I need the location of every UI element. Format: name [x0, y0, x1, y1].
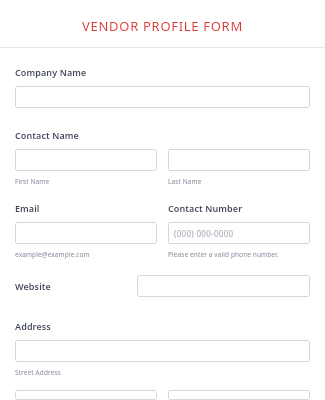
button[interactable] — [15, 149, 157, 171]
button[interactable]: (000) 000-0000 — [168, 222, 310, 244]
staticText: example@example.com — [15, 250, 90, 259]
staticText: Last Name — [168, 177, 202, 186]
staticText: Website — [15, 280, 137, 292]
button[interactable] — [15, 222, 157, 244]
button[interactable] — [168, 390, 310, 400]
staticText: Contact Name — [15, 129, 79, 141]
staticText: First Name — [15, 177, 50, 186]
staticText: Address — [15, 320, 51, 332]
staticText: Street Address — [15, 368, 61, 377]
button[interactable] — [15, 86, 310, 108]
staticText: Contact Number — [168, 202, 243, 214]
staticText: Email — [15, 202, 40, 214]
staticText: Company Name — [15, 66, 87, 78]
button[interactable] — [168, 149, 310, 171]
button[interactable] — [137, 275, 310, 297]
button[interactable] — [15, 340, 310, 362]
staticText: Please enter a valid phone number. — [168, 250, 279, 259]
button[interactable] — [15, 390, 157, 400]
staticText: VENDOR PROFILE FORM — [0, 17, 325, 35]
staticText: (000) 000-0000 — [174, 228, 234, 239]
